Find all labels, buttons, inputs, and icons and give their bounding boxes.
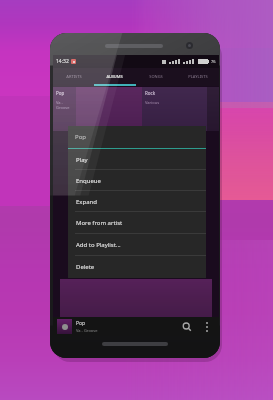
staticText: ARTISTS	[66, 74, 82, 79]
button[interactable]: Pop	[53, 87, 76, 131]
staticText: Va - Groove	[76, 328, 98, 333]
staticText: 14:32	[56, 58, 69, 65]
staticText: Various	[145, 100, 160, 105]
button[interactable]: ALBUMS	[94, 68, 135, 84]
button[interactable]: PLAYLISTS	[177, 68, 219, 84]
staticText: Pop	[76, 320, 86, 327]
button[interactable]: Search	[177, 317, 197, 336]
button[interactable]: More options	[197, 317, 217, 336]
staticText: PLAYLISTS	[188, 74, 208, 79]
staticText: Delete	[76, 263, 95, 271]
staticText: Play	[76, 156, 88, 164]
button[interactable]: SONGS	[135, 68, 177, 84]
button[interactable]: Enqueue	[68, 170, 206, 191]
staticText: Expand	[76, 198, 97, 206]
button[interactable]	[60, 279, 212, 318]
button[interactable]	[76, 87, 142, 131]
button[interactable]: ARTISTS	[53, 68, 94, 84]
staticText: ALBUMS	[106, 74, 123, 79]
button[interactable]: Add to Playlist...	[68, 234, 206, 256]
staticText: Pop	[56, 90, 65, 96]
button[interactable]: Delete	[68, 256, 206, 278]
staticText: Pop	[75, 133, 86, 141]
staticText: Rock	[145, 90, 156, 96]
button[interactable]: Expand	[68, 191, 206, 212]
staticText: 76	[211, 59, 216, 64]
staticText: More from artist	[76, 219, 123, 227]
button[interactable]: Play	[68, 149, 206, 170]
button[interactable]: Rock	[142, 87, 207, 131]
staticText: Add to Playlist...	[76, 241, 121, 249]
staticText: Enqueue	[76, 177, 101, 185]
button[interactable]: More from artist	[68, 212, 206, 234]
staticText: SONGS	[149, 74, 163, 79]
staticText: Va - Groove	[56, 100, 76, 110]
